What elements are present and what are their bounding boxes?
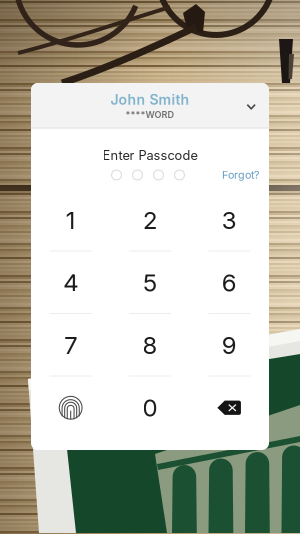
button[interactable]: 8 xyxy=(110,314,190,376)
staticText: ****WORD xyxy=(125,109,174,120)
button[interactable]: 1 xyxy=(31,189,110,251)
staticText: 3 xyxy=(222,206,237,235)
button[interactable]: 4 xyxy=(31,251,110,314)
staticText: John Smith xyxy=(110,91,189,108)
button[interactable]: 6 xyxy=(190,251,269,314)
button[interactable]: 3 xyxy=(190,189,269,251)
staticText: 8 xyxy=(142,331,157,360)
staticText: Enter Passcode xyxy=(102,147,197,163)
staticText: Forgot? xyxy=(222,168,259,181)
staticText: 1 xyxy=(66,206,76,235)
button[interactable]: Forgot? xyxy=(222,168,269,181)
staticText: 4 xyxy=(63,268,78,297)
staticText: 0 xyxy=(142,393,157,422)
button[interactable]: 9 xyxy=(190,314,269,376)
button[interactable]: Unlock with fingerprint xyxy=(31,376,110,439)
button[interactable]: John Smith xyxy=(31,83,269,128)
staticText: 9 xyxy=(222,331,237,360)
button[interactable]: 7 xyxy=(31,314,110,376)
button[interactable]: 2 xyxy=(110,189,190,251)
button[interactable]: Delete xyxy=(190,376,269,439)
button[interactable]: 0 xyxy=(110,376,190,439)
button[interactable]: 5 xyxy=(110,251,190,314)
staticText: 7 xyxy=(64,331,77,360)
staticText: 2 xyxy=(143,206,157,235)
staticText: 6 xyxy=(222,268,237,297)
staticText: 5 xyxy=(143,268,157,297)
